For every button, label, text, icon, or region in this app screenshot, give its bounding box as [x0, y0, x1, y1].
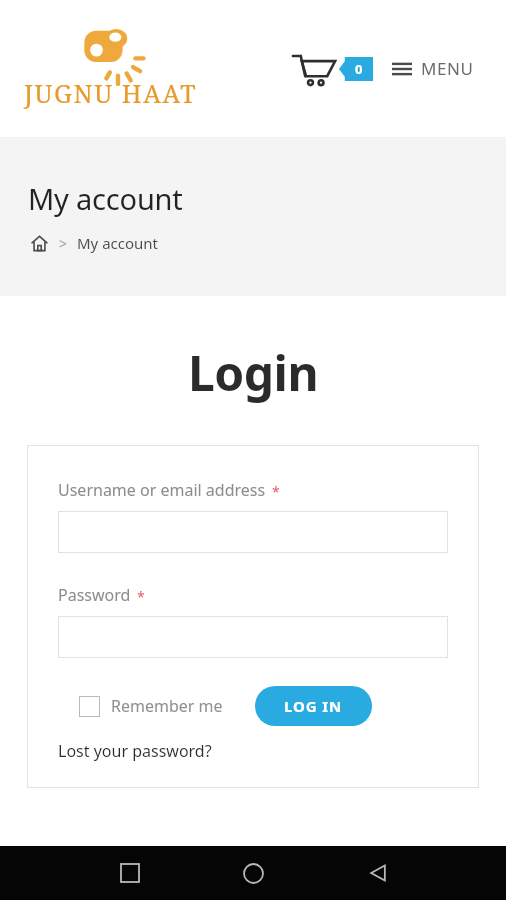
staticText: Remember me [111, 695, 223, 717]
button[interactable]: Remember me [79, 695, 223, 717]
staticText: Username or email address [58, 479, 266, 501]
staticText: Login [0, 340, 506, 405]
button[interactable]: My account [77, 233, 159, 253]
button[interactable]: Recent apps [110, 853, 150, 893]
button[interactable]: Lost your password? [58, 740, 212, 762]
button[interactable] [58, 511, 448, 553]
staticText: * [137, 587, 145, 606]
button[interactable]: MENU [392, 57, 474, 80]
staticText: MENU [421, 57, 474, 80]
staticText: LOG IN [284, 696, 343, 716]
button[interactable] [58, 616, 448, 658]
staticText: Password [58, 584, 131, 606]
button[interactable]: Back [358, 853, 398, 893]
button[interactable]: Home [233, 853, 273, 893]
staticText: * [272, 482, 280, 501]
staticText: 0 [355, 60, 363, 78]
button[interactable]: Jugnu Haat home [24, 28, 198, 110]
staticText: My account [28, 179, 183, 218]
button[interactable]: Home [28, 232, 50, 254]
staticText: > [59, 234, 68, 253]
staticText: JUGNU HAAT [24, 76, 198, 110]
button[interactable]: Cart, 0 items [292, 51, 373, 87]
button[interactable]: LOG IN [255, 686, 372, 726]
